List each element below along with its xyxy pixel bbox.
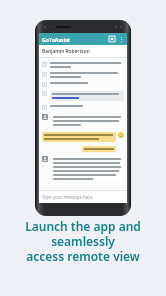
button[interactable] xyxy=(42,103,124,112)
button[interactable] xyxy=(42,70,124,80)
button[interactable] xyxy=(42,112,124,130)
button[interactable]: More options xyxy=(117,35,125,43)
button[interactable] xyxy=(42,154,124,184)
staticText: Launch the app and seamlessly access rem… xyxy=(6,218,160,264)
staticText: GoToAssist xyxy=(42,36,71,43)
button[interactable] xyxy=(42,80,124,89)
button[interactable] xyxy=(42,60,124,70)
staticText: Type your message here xyxy=(42,194,93,200)
button[interactable] xyxy=(42,130,124,144)
button[interactable] xyxy=(42,89,124,103)
button[interactable] xyxy=(42,144,124,154)
button[interactable]: Share screen xyxy=(108,35,116,43)
staticText: Benjamin Robertson xyxy=(42,48,90,55)
button[interactable]: Type your message here xyxy=(39,191,127,203)
